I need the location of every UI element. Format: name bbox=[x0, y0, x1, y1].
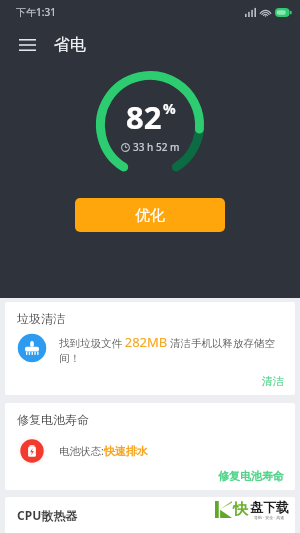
staticText: 下午1:31 bbox=[16, 5, 56, 19]
staticText: 82 bbox=[126, 96, 162, 138]
button[interactable]: 修复电池寿命 bbox=[218, 469, 284, 483]
staticText: 电池状态:快速排水 bbox=[59, 444, 148, 458]
button[interactable]: Menu bbox=[10, 28, 44, 62]
staticText: 找到垃圾文件 282MB 清洁手机以释放存储空间！ bbox=[59, 333, 285, 365]
staticText: 导航 · 安全 · 高速 bbox=[254, 515, 285, 520]
button[interactable]: 清洁 bbox=[262, 374, 284, 388]
staticText: 快 bbox=[233, 500, 248, 519]
button[interactable]: 修复电池寿命 bbox=[5, 403, 295, 490]
staticText: % bbox=[163, 99, 176, 118]
button[interactable]: 优化 bbox=[75, 198, 225, 232]
button[interactable]: 垃圾清洁 bbox=[5, 302, 295, 395]
staticText: 33 h 52 m bbox=[133, 140, 180, 154]
staticText: 优化 bbox=[135, 206, 165, 225]
staticText: 盘下载 bbox=[250, 499, 289, 515]
staticText: 省电 bbox=[54, 35, 86, 55]
staticText: CPU散热器 bbox=[17, 507, 78, 523]
button[interactable]: CPU散热器 bbox=[5, 497, 295, 533]
staticText: 修复电池寿命 bbox=[17, 412, 89, 427]
staticText: 垃圾清洁 bbox=[17, 311, 65, 326]
